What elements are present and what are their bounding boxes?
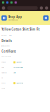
staticText: Origin <box>1 87 5 89</box>
staticText: Mustard <box>16 61 22 63</box>
button[interactable]: Back <box>2 6 5 10</box>
staticText: Care <box>1 82 5 84</box>
staticText: Style <box>9 34 12 36</box>
staticText: Certificate <box>1 50 16 53</box>
button[interactable]: Tabs <box>45 6 48 10</box>
staticText: Organic Cotton <box>13 67 23 68</box>
staticText: GOTS Organic <box>1 55 11 57</box>
staticText: Material <box>1 72 6 74</box>
staticText: Item specifics <box>1 45 10 47</box>
staticText: Brand <box>1 34 6 36</box>
staticText: Style <box>1 67 4 68</box>
staticText: Details <box>1 39 11 43</box>
button[interactable]: Shop App <box>0 11 50 25</box>
staticText: Shop App <box>8 15 22 19</box>
staticText: Colour <box>1 61 6 63</box>
staticText: Yellow Cotton Shirt Slim Fit <box>1 28 39 31</box>
staticText: Open in the app <box>8 19 18 21</box>
staticText: Wash cold <box>16 82 23 84</box>
staticText: Slim <box>13 72 15 74</box>
button[interactable]: Share <box>40 6 43 10</box>
